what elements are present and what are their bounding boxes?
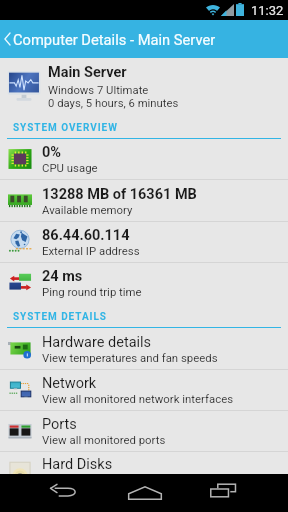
staticText: SYSTEM DETAILS <box>13 311 107 323</box>
button[interactable]: Main Server <box>0 58 288 116</box>
staticText: 86.44.60.114 <box>42 227 130 244</box>
staticText: Hard Disks <box>42 456 113 473</box>
staticText: Network <box>42 375 97 392</box>
button[interactable]: Hard Disks <box>0 451 288 492</box>
staticText: View all monitored network interfaces <box>42 392 234 405</box>
button[interactable]: Home <box>119 474 169 512</box>
staticText: 13288 MB of 16361 MB <box>42 186 197 203</box>
staticText: 0% <box>42 144 62 161</box>
staticText: Ports <box>42 416 77 433</box>
button[interactable]: Network <box>0 370 288 411</box>
button[interactable]: Back <box>40 474 90 512</box>
button[interactable]: Back <box>0 20 288 58</box>
staticText: Available memory <box>42 203 133 216</box>
button[interactable]: Recent apps <box>198 474 248 512</box>
button[interactable]: Hardware details <box>0 329 288 370</box>
button[interactable]: 0% <box>0 139 288 180</box>
staticText: CPU usage <box>42 161 98 174</box>
staticText: Windows 7 Ultimate <box>48 84 149 97</box>
staticText: 11:32 <box>251 3 284 18</box>
staticText: View all monitored ports <box>42 433 166 446</box>
staticText: 24 ms <box>42 268 83 285</box>
staticText: Ping round trip time <box>42 285 142 298</box>
other: Back <box>3 32 11 46</box>
button[interactable]: Ports <box>0 411 288 452</box>
staticText: View temperatures and fan speeds <box>42 351 218 364</box>
button[interactable]: 86.44.60.114 <box>0 222 288 263</box>
staticText: External IP address <box>42 244 140 257</box>
staticText: SYSTEM OVERVIEW <box>13 122 118 134</box>
button[interactable]: 24 ms <box>0 263 288 304</box>
staticText: 0 days, 5 hours, 6 minutes <box>48 97 179 110</box>
staticText: Main Server <box>48 64 127 81</box>
button[interactable]: 13288 MB of 16361 MB <box>0 181 288 222</box>
staticText: Computer Details - Main Server <box>13 31 216 48</box>
staticText: Hardware details <box>42 334 152 351</box>
